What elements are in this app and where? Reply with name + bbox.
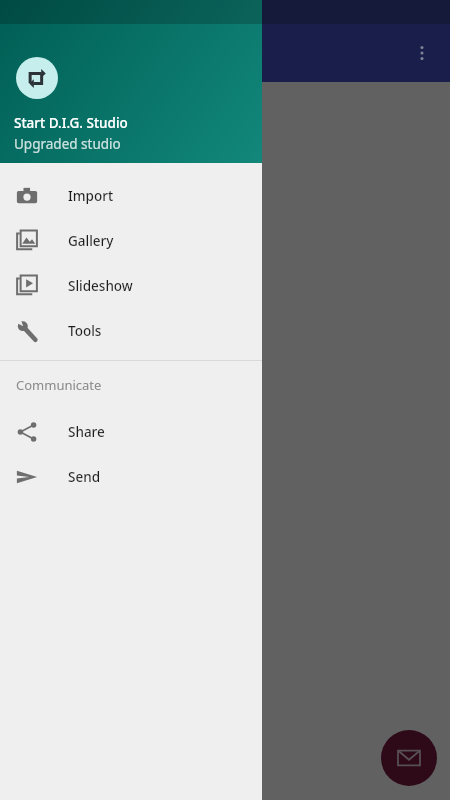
button[interactable]: Import xyxy=(0,173,262,218)
staticText: Share xyxy=(68,423,105,441)
staticText: Communicate xyxy=(16,376,102,394)
button[interactable]: Share xyxy=(0,409,262,454)
staticText: Send xyxy=(68,468,101,486)
button[interactable]: Tools xyxy=(0,308,262,353)
button[interactable]: More options xyxy=(399,30,445,76)
staticText: Import xyxy=(68,187,114,205)
staticText: Tools xyxy=(68,322,102,340)
staticText: Upgraded studio xyxy=(14,135,121,153)
button[interactable]: Send xyxy=(0,454,262,499)
button[interactable]: Gallery xyxy=(0,218,262,263)
button[interactable]: Start D.I.G. Studio xyxy=(0,0,262,163)
button[interactable]: Compose message xyxy=(381,730,437,786)
staticText: Gallery xyxy=(68,232,114,250)
staticText: Start D.I.G. Studio xyxy=(14,114,128,132)
button[interactable]: Slideshow xyxy=(0,263,262,308)
staticText: Slideshow xyxy=(68,277,133,295)
